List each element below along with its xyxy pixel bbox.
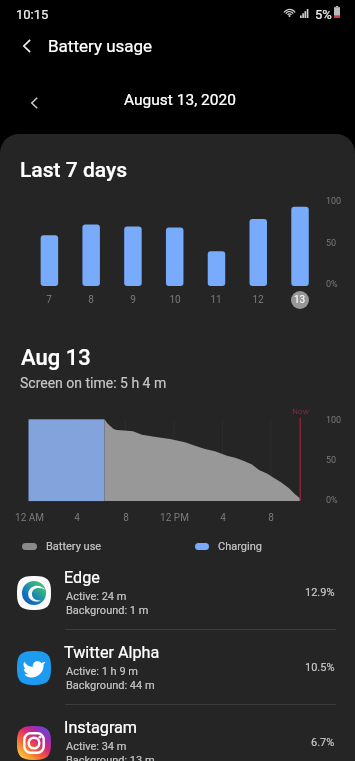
staticText: Active: 1 h 9 m [66,665,138,678]
staticText: 11 [210,294,222,306]
button[interactable]: Previous day [18,87,50,119]
staticText: 0% [326,279,338,290]
staticText: 8 [123,512,129,524]
staticText: 8 [88,294,94,306]
staticText: Now [292,407,309,416]
button[interactable]: Twitter Alpha [0,637,355,705]
staticText: August 13, 2020 [124,91,236,109]
staticText: Background: 1 m [66,604,149,617]
button[interactable]: Charging [190,536,262,556]
staticText: Charging [218,540,262,553]
staticText: 0% [326,495,338,506]
staticText: Battery usage [48,36,153,56]
button[interactable]: Battery use [17,536,102,556]
staticText: Last 7 days [20,158,128,183]
staticText: 8 [268,512,274,524]
staticText: 10 [169,294,181,306]
staticText: 10.5% [305,661,335,674]
staticText: Active: 34 m [66,740,127,753]
staticText: Active: 24 m [66,590,127,603]
staticText: Aug 13 [21,345,91,371]
staticText: 10:15 [16,7,49,22]
staticText: 9 [130,294,136,306]
staticText: 6.7% [311,736,335,749]
staticText: Twitter Alpha [64,643,160,662]
button[interactable]: 13 [291,291,309,309]
staticText: Background: 13 m [66,754,155,761]
staticText: 12.9% [305,586,335,599]
button[interactable]: Back [9,28,45,64]
staticText: 12 PM [160,512,189,524]
staticText: 7 [46,294,52,306]
button[interactable]: Instagram [0,712,355,761]
staticText: 4 [220,512,226,524]
staticText: 13 [294,294,306,306]
staticText: Screen on time: 5 h 4 m [20,375,167,391]
staticText: 100 [326,196,342,207]
staticText: 12 AM [15,512,44,524]
staticText: Instagram [64,718,138,737]
staticText: 4 [74,512,80,524]
staticText: Battery use [46,540,102,553]
staticText: Edge [64,568,100,587]
staticText: Background: 44 m [66,679,155,692]
staticText: 100 [326,415,342,426]
staticText: 50 [326,455,337,466]
staticText: 5% [315,7,332,22]
button[interactable]: Edge [0,562,355,630]
staticText: 12 [252,294,264,306]
staticText: 50 [326,238,337,249]
